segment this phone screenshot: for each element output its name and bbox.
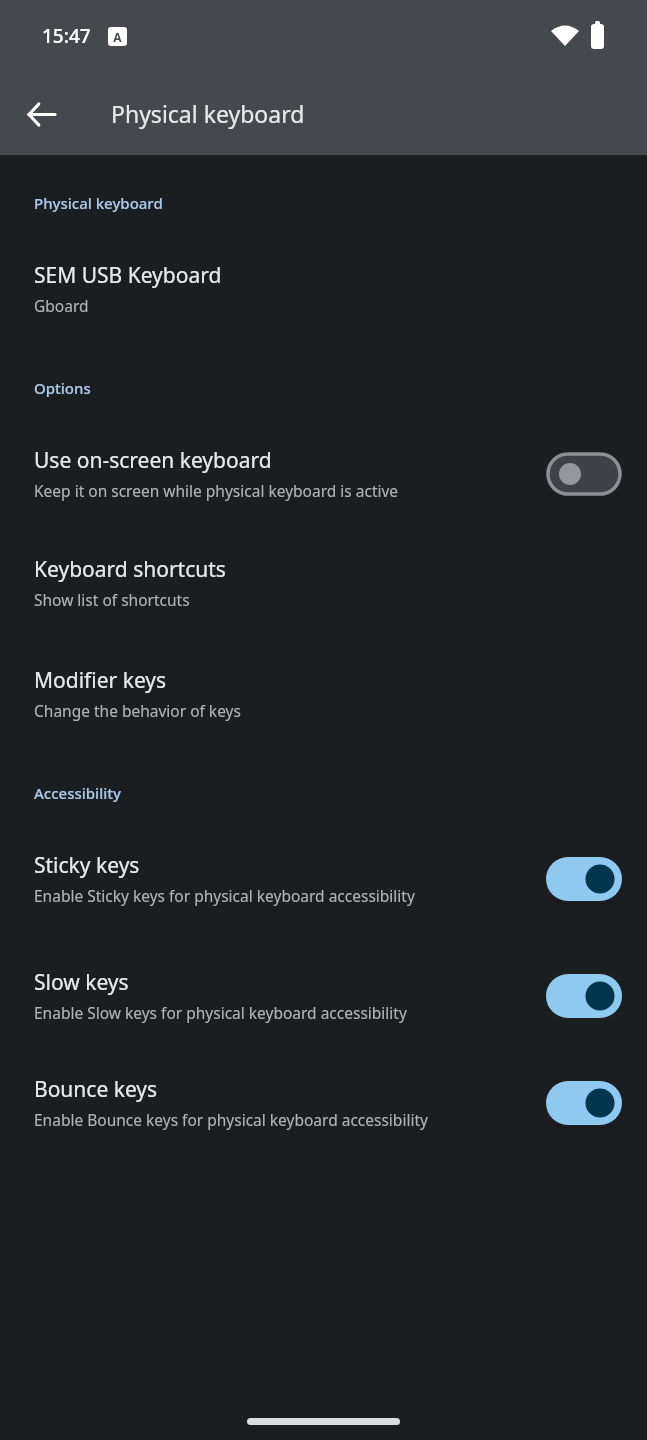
staticText: Accessibility [34, 783, 121, 803]
staticText: Gboard [34, 295, 89, 316]
staticText: Keep it on screen while physical keyboar… [34, 480, 399, 501]
staticText: Keyboard shortcuts [34, 555, 226, 584]
button[interactable]: Sticky keys [0, 851, 647, 906]
staticText: A [113, 29, 122, 45]
staticText: Enable Sticky keys for physical keyboard… [34, 885, 434, 906]
staticText: Modifier keys [34, 666, 167, 695]
staticText: Physical keyboard [111, 98, 305, 129]
staticText: Use on-screen keyboard [34, 446, 272, 475]
staticText: SEM USB Keyboard [34, 261, 222, 290]
button[interactable]: Use on-screen keyboard [0, 446, 647, 501]
staticText: Bounce keys [34, 1075, 158, 1104]
staticText: Sticky keys [34, 851, 140, 880]
staticText: Show list of shortcuts [34, 589, 190, 610]
button[interactable]: Toggle on [546, 856, 622, 902]
button[interactable]: Keyboard shortcuts [0, 555, 647, 610]
button[interactable]: Slow keys [0, 968, 647, 1023]
staticText: 15:47 [42, 23, 91, 49]
button[interactable]: Back [17, 90, 65, 138]
staticText: Slow keys [34, 968, 129, 997]
button[interactable]: Toggle on [546, 1080, 622, 1126]
button[interactable]: Toggle off [546, 451, 622, 497]
staticText: Enable Bounce keys for physical keyboard… [34, 1109, 444, 1130]
staticText: Enable Slow keys for physical keyboard a… [34, 1002, 407, 1023]
button[interactable]: Modifier keys [0, 666, 647, 721]
button[interactable]: SEM USB Keyboard [0, 261, 647, 316]
staticText: Change the behavior of keys [34, 700, 241, 721]
button[interactable]: Toggle on [546, 973, 622, 1019]
staticText: Options [34, 378, 91, 398]
button[interactable]: Bounce keys [0, 1075, 647, 1130]
staticText: Physical keyboard [34, 193, 163, 213]
